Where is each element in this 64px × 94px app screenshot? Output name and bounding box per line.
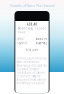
staticText: Wednesday, 12 June 2024: [17, 27, 46, 34]
staticText: Visa ••42: [35, 41, 47, 45]
staticText: Payment: [16, 41, 27, 45]
staticText: $28.40: [26, 23, 37, 26]
staticText: #48210: [35, 37, 47, 41]
staticText: Order: [16, 37, 24, 41]
staticText: Details of Item Purchased: [10, 3, 54, 8]
staticText: Lorem ipsum dolor sit amet consectetur a…: [16, 57, 47, 85]
staticText: Total paid: [25, 48, 38, 52]
